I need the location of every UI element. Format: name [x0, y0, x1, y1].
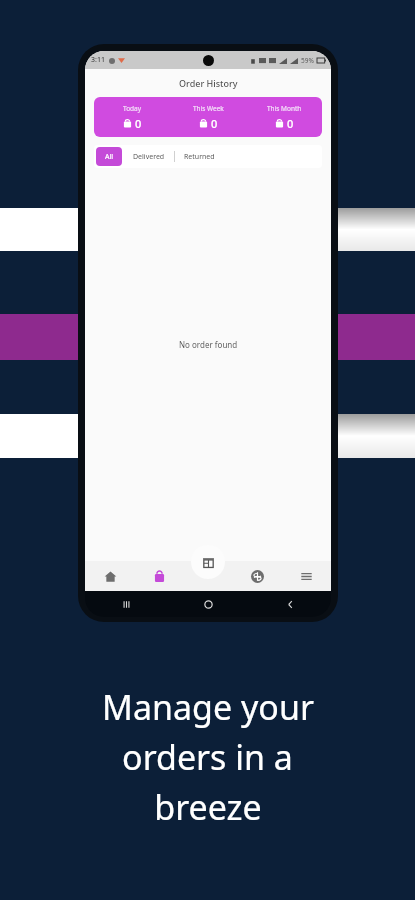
- staticText: This Week: [193, 104, 224, 113]
- button[interactable]: Menu: [282, 561, 331, 591]
- button[interactable]: Home: [85, 561, 135, 591]
- staticText: Returned: [184, 152, 215, 162]
- button[interactable]: Orders: [135, 561, 184, 591]
- button[interactable]: Returned: [184, 152, 215, 162]
- staticText: Today: [123, 104, 142, 113]
- staticText: 0: [287, 116, 294, 131]
- staticText: 0: [211, 116, 218, 131]
- staticText: This Month: [267, 104, 302, 113]
- button[interactable]: This Month: [246, 104, 322, 131]
- staticText: All: [105, 152, 114, 162]
- button[interactable]: Delivered: [133, 152, 165, 162]
- button[interactable]: Today: [94, 104, 170, 131]
- staticText: 59%: [301, 56, 314, 65]
- staticText: 3:11: [91, 55, 105, 65]
- staticText: orders in a: [122, 734, 293, 780]
- button[interactable]: This Week: [170, 104, 246, 131]
- staticText: 0: [135, 116, 142, 131]
- staticText: Order History: [179, 77, 238, 89]
- button[interactable]: All: [96, 147, 122, 166]
- staticText: breeze: [154, 784, 262, 830]
- button[interactable]: Home: [167, 591, 249, 617]
- button[interactable]: Recents: [85, 591, 167, 617]
- staticText: Delivered: [133, 152, 165, 162]
- staticText: Manage your: [102, 684, 314, 730]
- button[interactable]: Payments: [233, 561, 282, 591]
- staticText: No order found: [179, 339, 238, 350]
- button[interactable]: Store: [191, 545, 225, 579]
- button[interactable]: Back: [249, 591, 331, 617]
